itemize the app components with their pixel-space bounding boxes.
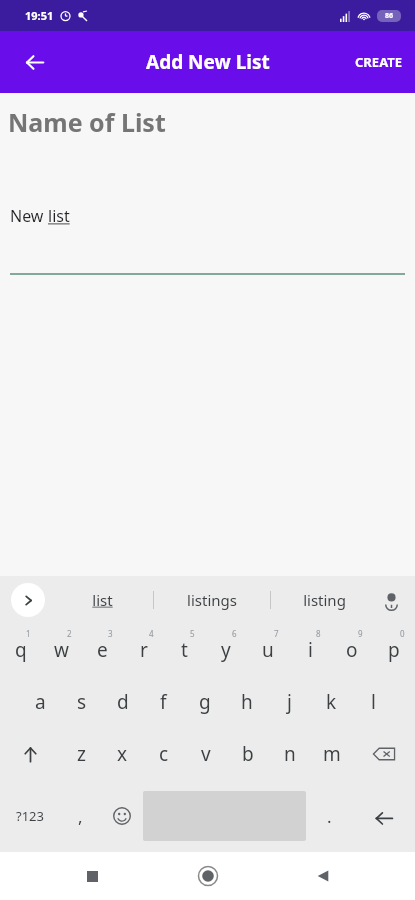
button[interactable]: d (102, 676, 143, 728)
staticText: k (326, 689, 337, 715)
staticText: 5 (190, 628, 195, 639)
staticText: CREATE (355, 53, 403, 71)
button[interactable]: r (123, 624, 164, 676)
button[interactable]: ?123 (0, 780, 59, 852)
staticText: 1 (26, 628, 31, 639)
button[interactable]: listings (154, 576, 270, 624)
staticText: a (35, 689, 46, 715)
button[interactable]: z (61, 728, 102, 780)
staticText: r (140, 637, 148, 663)
staticText: o (346, 637, 358, 663)
staticText: 86 (385, 11, 394, 21)
staticText: p (388, 637, 400, 663)
staticText: m (323, 741, 341, 767)
staticText: y (221, 637, 231, 663)
staticText: . (327, 805, 332, 828)
staticText: j (287, 689, 292, 715)
button[interactable]: Emoji (101, 780, 143, 852)
staticText: listing (303, 590, 346, 610)
staticText: Add New List (146, 49, 270, 75)
button[interactable]: b (227, 728, 269, 780)
staticText: h (241, 689, 253, 715)
staticText: New (10, 205, 48, 227)
staticText: x (117, 741, 128, 767)
staticText: e (97, 637, 108, 663)
staticText: listings (187, 590, 237, 610)
button[interactable]: i (289, 624, 331, 676)
staticText: 8 (316, 628, 321, 639)
button[interactable]: Back (303, 856, 343, 896)
button[interactable]: Voice input (375, 584, 407, 616)
staticText: ?123 (16, 807, 44, 825)
staticText: 6 (232, 628, 237, 639)
staticText: 2 (67, 628, 72, 639)
staticText: l (371, 689, 376, 715)
button[interactable]: j (268, 676, 310, 728)
button[interactable]: More suggestions (11, 583, 45, 617)
staticText: 3 (108, 628, 113, 639)
button[interactable]: list (52, 576, 153, 624)
button[interactable]: . (306, 780, 352, 852)
button[interactable]: Recents (72, 856, 112, 896)
staticText: u (262, 637, 274, 663)
button[interactable]: u (247, 624, 289, 676)
button[interactable]: CREATE (343, 43, 415, 81)
button[interactable]: , (59, 780, 101, 852)
button[interactable]: m (311, 728, 353, 780)
staticText: 7 (274, 628, 279, 639)
button[interactable]: Back (12, 40, 56, 84)
staticText: list (92, 590, 113, 610)
button[interactable]: c (143, 728, 185, 780)
button[interactable]: q (0, 624, 41, 676)
staticText: , (78, 805, 83, 828)
staticText: v (201, 741, 211, 767)
button[interactable]: n (269, 728, 311, 780)
button[interactable]: k (310, 676, 352, 728)
button[interactable]: listing (271, 576, 377, 624)
staticText: d (117, 689, 129, 715)
staticText: q (15, 637, 27, 663)
staticText: b (242, 741, 254, 767)
staticText: c (159, 741, 169, 767)
button[interactable]: p (373, 624, 415, 676)
button[interactable]: f (143, 676, 184, 728)
staticText: w (54, 637, 69, 663)
staticText: Name of List (8, 105, 166, 139)
staticText: g (199, 689, 211, 715)
button[interactable]: s (61, 676, 102, 728)
button[interactable]: Shift (0, 728, 61, 780)
button[interactable]: g (184, 676, 226, 728)
button[interactable]: w (41, 624, 82, 676)
button[interactable]: e (82, 624, 123, 676)
staticText: 19:51 (25, 8, 54, 23)
staticText: 9 (358, 628, 363, 639)
button[interactable]: Enter (352, 780, 415, 852)
staticText: s (77, 689, 87, 715)
button[interactable]: y (205, 624, 247, 676)
staticText: t (181, 637, 188, 663)
staticText: n (284, 741, 296, 767)
staticText: list (48, 205, 70, 227)
staticText: 4 (149, 628, 154, 639)
button[interactable]: a (20, 676, 61, 728)
staticText: i (308, 637, 313, 663)
staticText: 0 (400, 628, 405, 639)
staticText: f (160, 689, 167, 715)
button[interactable]: x (102, 728, 143, 780)
button[interactable]: t (164, 624, 205, 676)
button[interactable]: v (185, 728, 227, 780)
button[interactable]: Home (188, 856, 228, 896)
staticText: z (77, 741, 86, 767)
button[interactable]: h (226, 676, 268, 728)
button[interactable]: l (352, 676, 394, 728)
button[interactable]: o (331, 624, 373, 676)
button[interactable]: Backspace (353, 728, 415, 780)
